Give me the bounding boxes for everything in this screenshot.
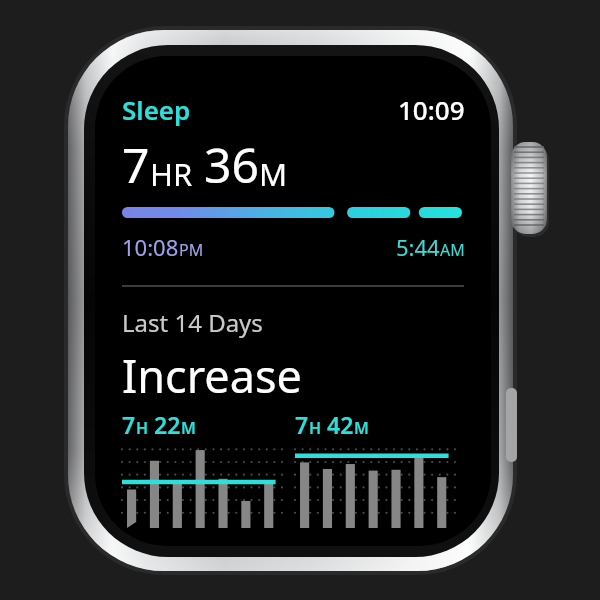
staticText: M xyxy=(354,417,369,439)
staticText: 10:08 xyxy=(122,232,179,262)
staticText: AM xyxy=(440,239,465,261)
staticText: 36 xyxy=(204,132,259,197)
button[interactable]: 7 xyxy=(122,409,282,528)
staticText: Increase xyxy=(122,345,302,406)
staticText: HR xyxy=(150,153,193,195)
staticText: 7 xyxy=(122,132,150,197)
staticText: 22 xyxy=(154,409,181,440)
staticText: 7 xyxy=(295,409,309,440)
staticText: 5:44 xyxy=(396,232,440,262)
staticText: Last 14 Days xyxy=(122,306,263,339)
staticText: 10:09 xyxy=(398,92,465,127)
staticText: M xyxy=(259,153,288,195)
staticText: 7 xyxy=(122,409,136,440)
staticText: M xyxy=(181,417,196,439)
staticText: H xyxy=(136,417,149,439)
staticText: PM xyxy=(179,239,204,261)
staticText: 42 xyxy=(327,409,354,440)
staticText: H xyxy=(309,417,322,439)
button[interactable]: Sleep xyxy=(122,92,191,127)
button[interactable]: 7 xyxy=(295,409,455,528)
